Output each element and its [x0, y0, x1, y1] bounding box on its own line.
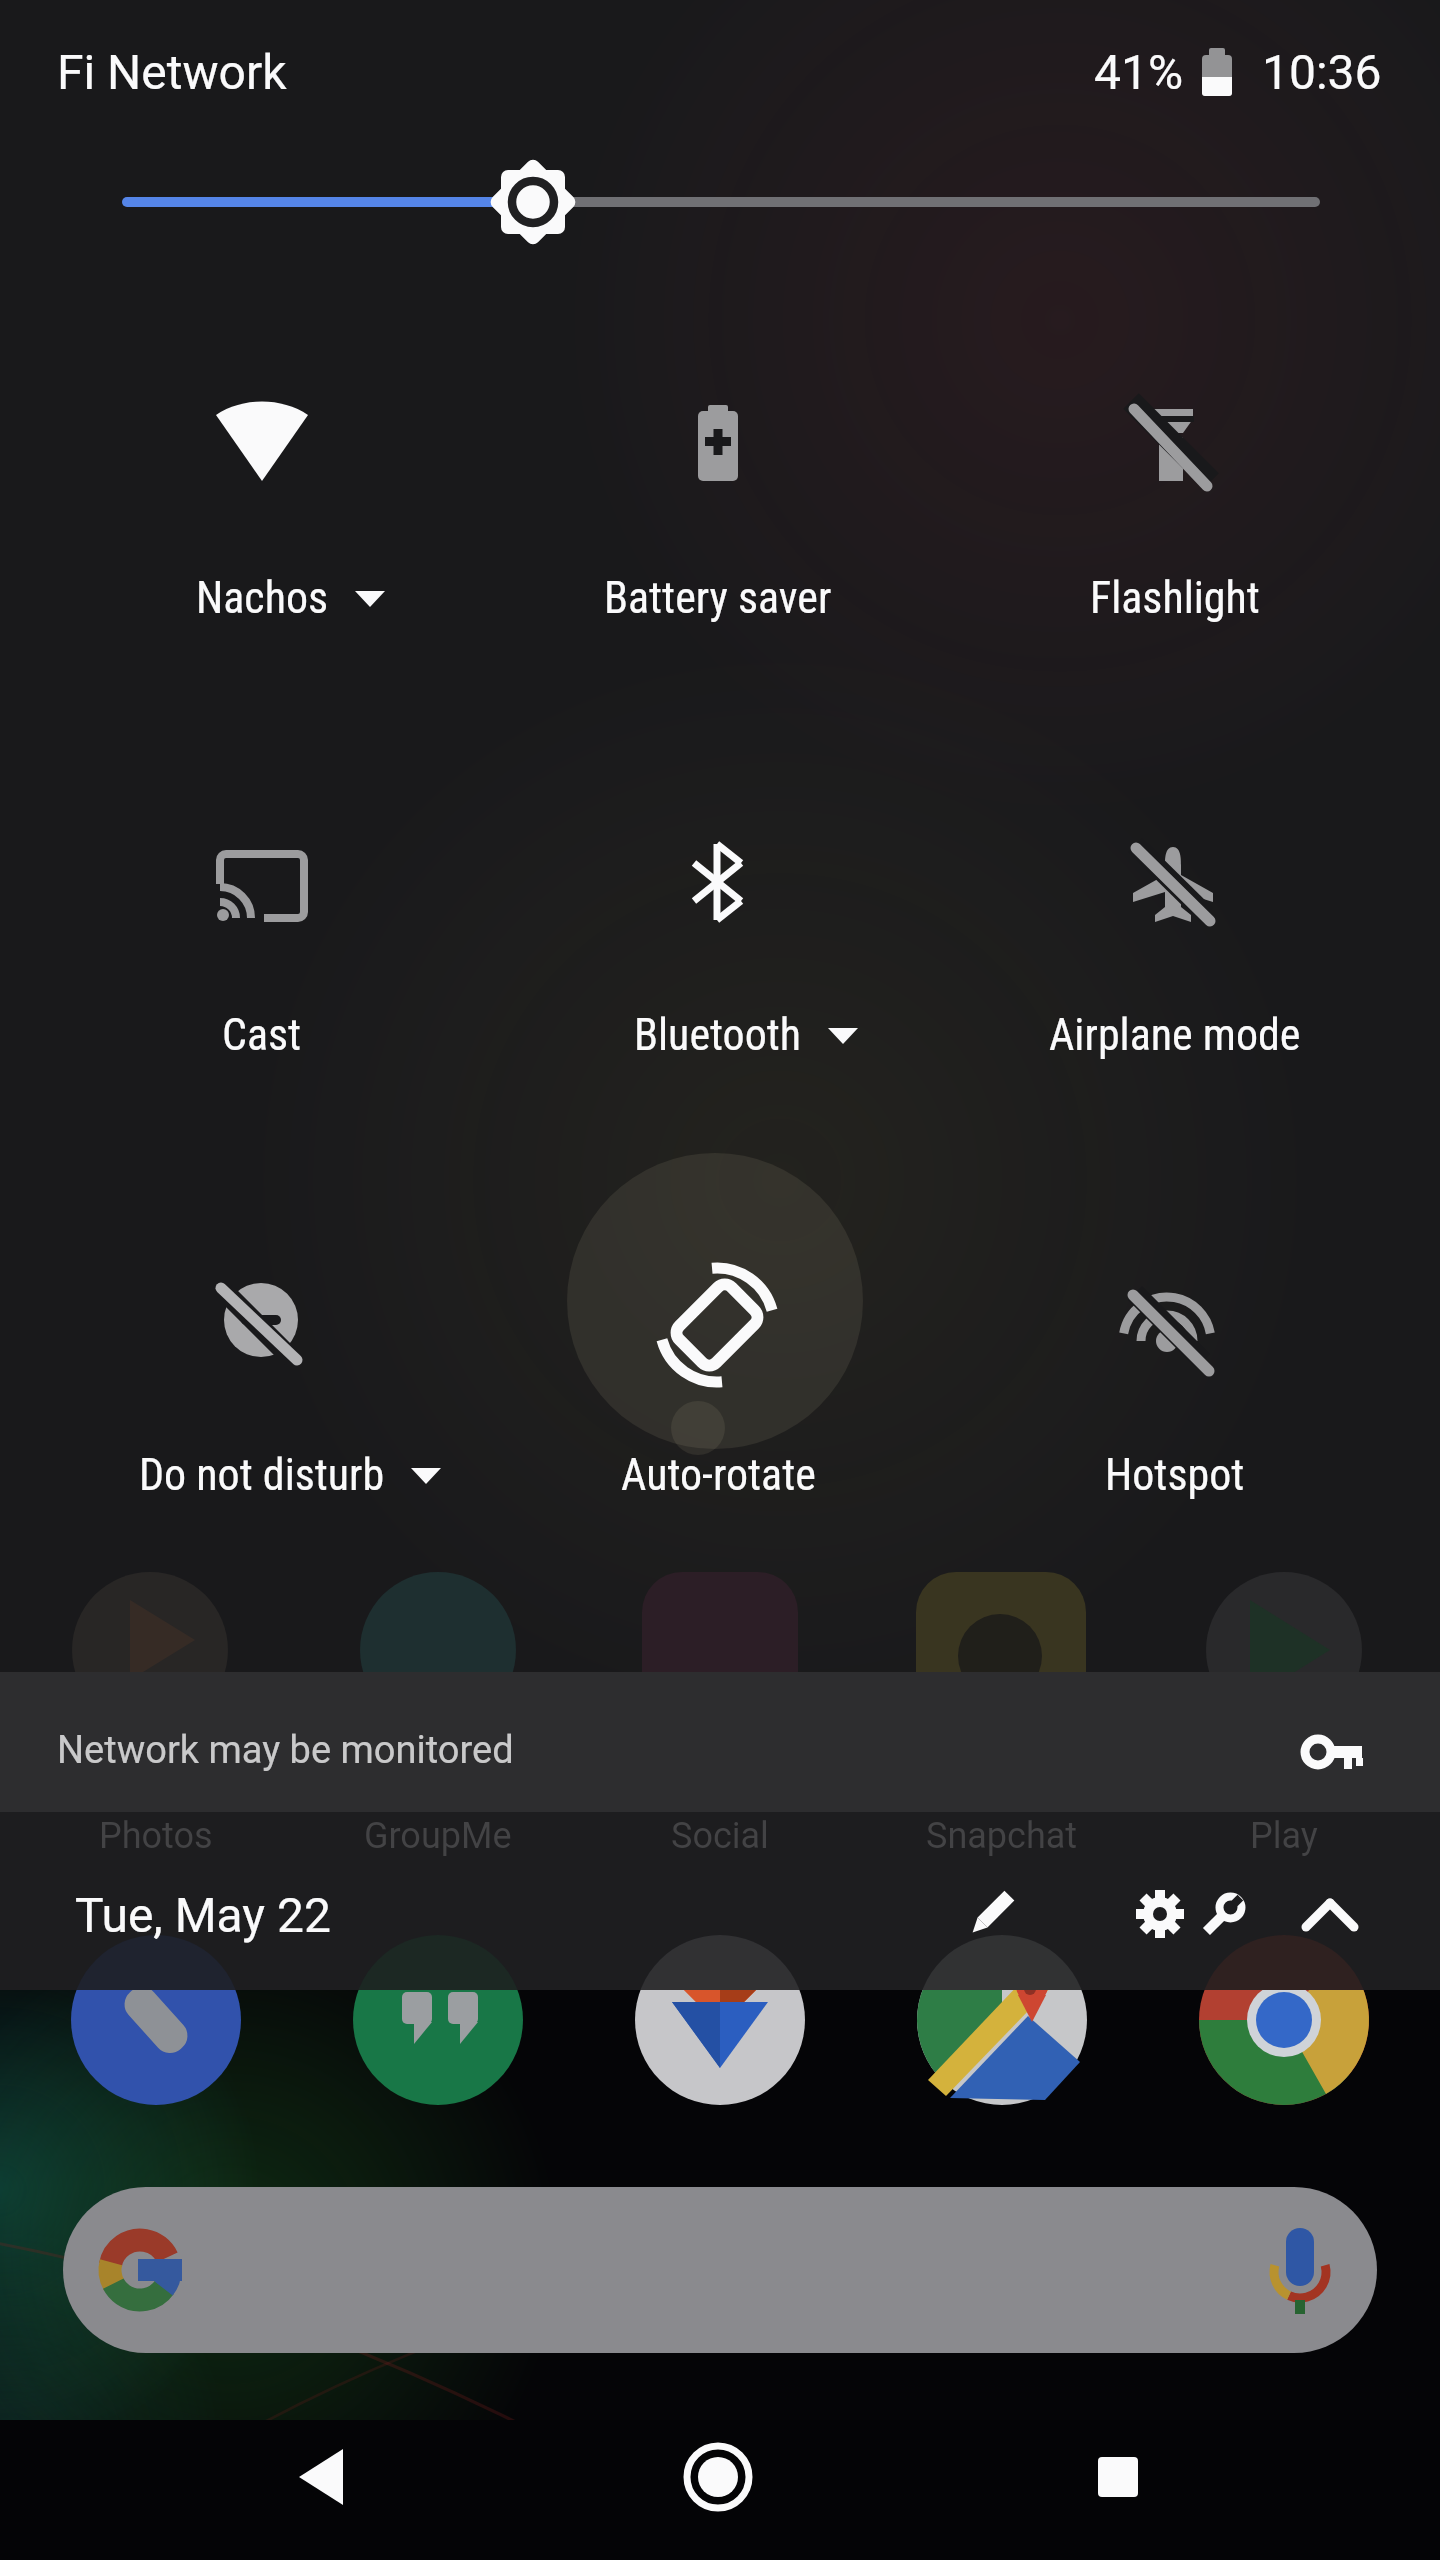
- staticText: Social: [671, 1815, 769, 1857]
- button[interactable]: [353, 1935, 523, 2105]
- button[interactable]: Cast: [102, 802, 422, 1092]
- staticText: 10:36: [1262, 44, 1382, 100]
- button[interactable]: Auto-rotate: [558, 1242, 878, 1532]
- staticText: Hotspot: [1105, 1449, 1245, 1501]
- button[interactable]: [1199, 1935, 1369, 2105]
- staticText: Tue, May 22: [75, 1887, 331, 1943]
- staticText: 41%: [1094, 44, 1184, 100]
- staticText: Fi Network: [57, 44, 287, 100]
- button[interactable]: [1028, 2410, 1208, 2550]
- button[interactable]: [1110, 1864, 1210, 1964]
- button[interactable]: [232, 2410, 412, 2550]
- staticText: Auto-rotate: [621, 1449, 816, 1501]
- staticText: Network may be monitored: [57, 1728, 514, 1773]
- staticText: Bluetooth: [634, 1009, 802, 1061]
- button[interactable]: [1185, 1864, 1265, 1964]
- staticText: Airplane mode: [1049, 1009, 1301, 1061]
- staticText: Battery saver: [604, 572, 832, 624]
- button[interactable]: [917, 1935, 1087, 2105]
- staticText: Snapchat: [926, 1815, 1078, 1857]
- staticText: Do not disturb: [139, 1449, 385, 1501]
- staticText: Play: [1250, 1815, 1318, 1857]
- button[interactable]: [71, 1935, 241, 2105]
- button[interactable]: [940, 1864, 1040, 1964]
- staticText: Flashlight: [1090, 572, 1260, 624]
- button[interactable]: Bluetooth: [558, 802, 878, 1092]
- button[interactable]: Hotspot: [1015, 1242, 1335, 1532]
- button[interactable]: [100, 150, 1340, 260]
- button[interactable]: [63, 2187, 1377, 2353]
- staticText: Nachos: [196, 572, 329, 624]
- button[interactable]: Nachos: [102, 365, 422, 655]
- staticText: GroupMe: [364, 1815, 512, 1857]
- button[interactable]: Airplane mode: [1015, 802, 1335, 1092]
- button[interactable]: [635, 1935, 805, 2105]
- button[interactable]: [630, 2410, 810, 2550]
- staticText: Cast: [222, 1009, 302, 1061]
- button[interactable]: Battery saver: [558, 365, 878, 655]
- button[interactable]: Flashlight: [1015, 365, 1335, 655]
- button[interactable]: Do not disturb: [102, 1242, 422, 1532]
- button[interactable]: [1280, 1864, 1380, 1964]
- staticText: Photos: [99, 1815, 213, 1857]
